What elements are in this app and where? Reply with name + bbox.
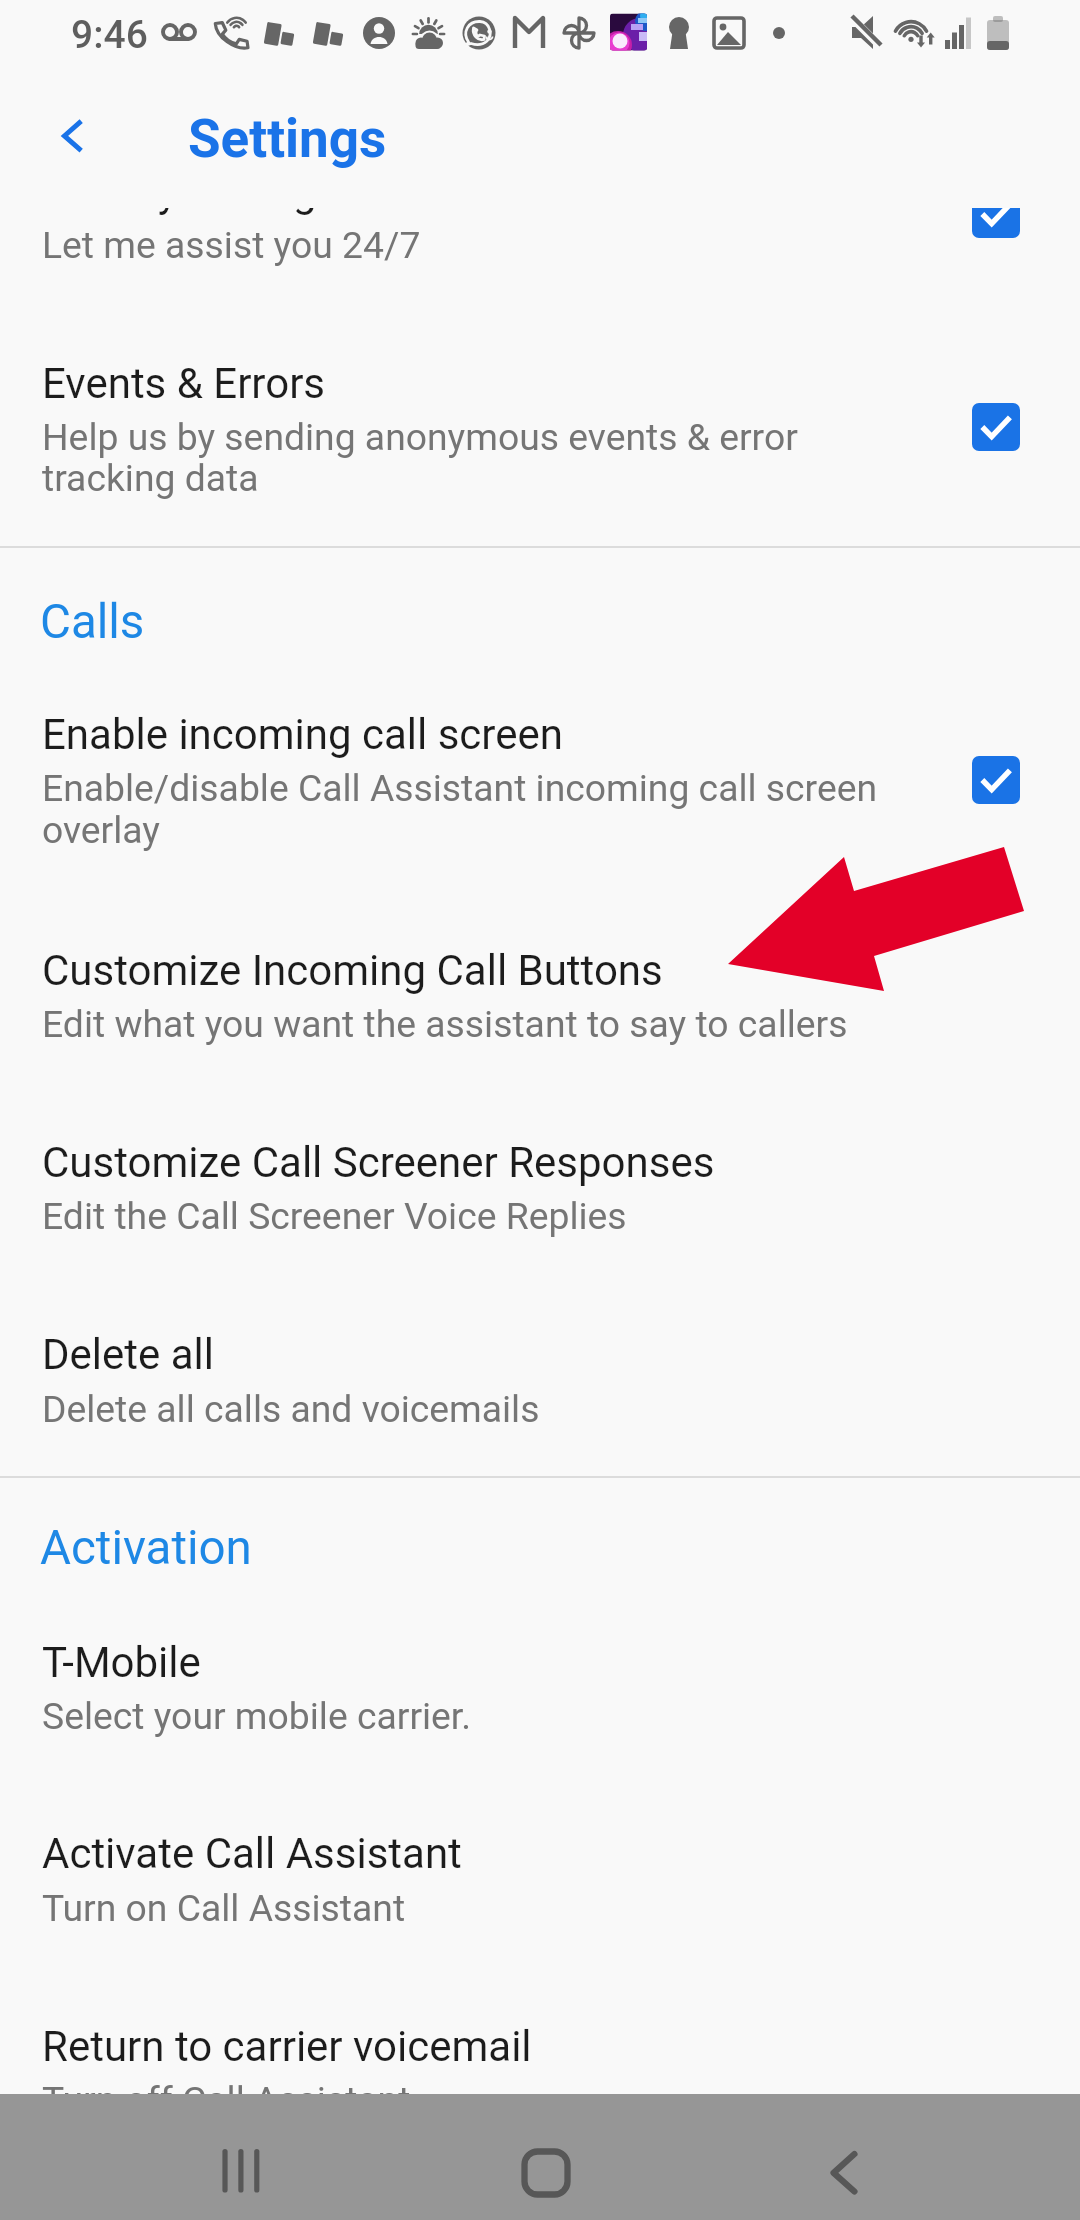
- button[interactable]: Back: [790, 2105, 900, 2215]
- staticText: Edit what you want the assistant to say …: [42, 1002, 942, 1046]
- button[interactable]: Privacy settings: [0, 208, 1080, 300]
- button[interactable]: Activate Call Assistant: [0, 1782, 1080, 1974]
- staticText: Help us by sending anonymous events & er…: [42, 415, 942, 459]
- staticText: Events & Errors: [42, 359, 942, 408]
- staticText: Privacy settings: [42, 208, 942, 216]
- staticText: Calls: [40, 594, 640, 650]
- button[interactable]: Customize Call Screener Responses: [0, 1090, 1080, 1282]
- button[interactable]: [150, 96, 450, 180]
- staticText: Let me assist you 24/7: [42, 223, 942, 267]
- button[interactable]: Enabled checkbox: [972, 403, 1020, 451]
- staticText: Settings: [188, 108, 588, 170]
- staticText: Delete all calls and voicemails: [42, 1387, 942, 1431]
- staticText: overlay: [42, 808, 942, 852]
- staticText: Turn on Call Assistant: [42, 1886, 942, 1930]
- button[interactable]: Recent apps: [186, 2105, 296, 2215]
- button[interactable]: Enabled checkbox: [972, 208, 1020, 238]
- button[interactable]: Events & Errors: [0, 330, 1080, 546]
- staticText: Select your mobile carrier.: [42, 1694, 942, 1738]
- button[interactable]: Customize Incoming Call Buttons: [0, 898, 1080, 1090]
- staticText: Edit the Call Screener Voice Replies: [42, 1194, 942, 1238]
- staticText: Turn off Call Assistant: [42, 2078, 942, 2095]
- staticText: Enable/disable Call Assistant incoming c…: [42, 766, 942, 810]
- staticText: Delete all: [42, 1330, 942, 1379]
- button[interactable]: Enable incoming call screen: [0, 682, 1080, 898]
- button[interactable]: Enabled checkbox: [972, 756, 1020, 804]
- button[interactable]: Home: [488, 2105, 598, 2215]
- staticText: Return to carrier voicemail: [42, 2022, 942, 2071]
- button[interactable]: Back: [24, 96, 104, 176]
- button[interactable]: T-Mobile: [0, 1610, 1080, 1782]
- staticText: Customize Incoming Call Buttons: [42, 946, 942, 995]
- staticText: Activate Call Assistant: [42, 1829, 942, 1878]
- button[interactable]: Delete all: [0, 1282, 1080, 1476]
- button[interactable]: Return to carrier voicemail: [0, 1974, 1080, 2095]
- staticText: 9:46: [71, 12, 271, 58]
- staticText: tracking data: [42, 456, 942, 500]
- staticText: Customize Call Screener Responses: [42, 1138, 942, 1187]
- staticText: Activation: [40, 1520, 640, 1576]
- staticText: T-Mobile: [42, 1638, 942, 1687]
- staticText: Enable incoming call screen: [42, 710, 942, 759]
